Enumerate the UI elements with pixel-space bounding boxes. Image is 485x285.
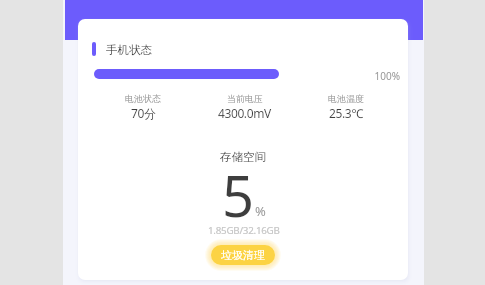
staticText: 100%	[365, 69, 400, 83]
staticText: 电池温度	[328, 93, 364, 104]
staticText: 手机状态	[106, 43, 152, 57]
staticText: 当前电压	[227, 93, 263, 104]
staticText: %	[255, 202, 266, 220]
staticText: 1.85GB/32.16GB	[208, 224, 280, 237]
staticText: 25.3℃	[329, 105, 363, 121]
button[interactable]: 垃圾清理	[211, 245, 275, 265]
staticText: 存储空间	[220, 150, 266, 164]
staticText: 垃圾清理	[221, 248, 265, 262]
staticText: 5	[222, 157, 255, 233]
staticText: 电池状态	[125, 93, 161, 104]
staticText: 4300.0mV	[218, 105, 271, 121]
staticText: 70分	[131, 105, 156, 121]
